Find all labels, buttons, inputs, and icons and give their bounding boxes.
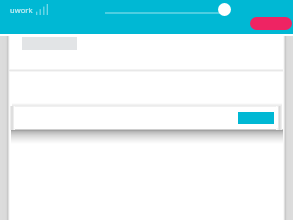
button[interactable]: Slider handle (218, 3, 231, 16)
button[interactable]: Search (14, 107, 278, 128)
button[interactable]: Sign up (250, 17, 292, 30)
staticText: uwork (10, 5, 33, 15)
